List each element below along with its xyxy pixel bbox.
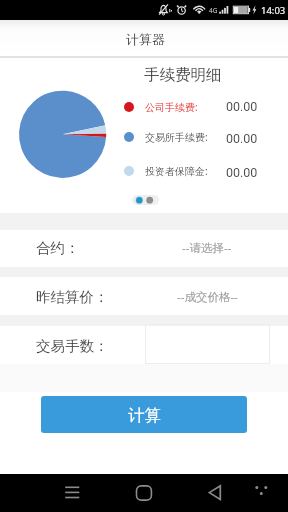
staticText: 交易所手续费: — [145, 130, 208, 144]
button[interactable]: Recent apps — [58, 474, 88, 512]
button[interactable]: Lots input — [145, 324, 270, 364]
staticText: 00.00 — [226, 165, 258, 180]
staticText: 计算 — [128, 405, 161, 426]
staticText: 合约： — [36, 239, 80, 257]
staticText: 4G — [209, 6, 218, 15]
staticText: 投资者保障金: — [145, 164, 208, 178]
button[interactable]: 合约： — [0, 229, 288, 267]
button[interactable]: Page indicator — [132, 195, 159, 205]
staticText: --成交价格-- — [177, 289, 238, 305]
button[interactable]: Back — [200, 474, 230, 512]
staticText: --请选择-- — [182, 240, 232, 256]
staticText: 昨结算价： — [36, 288, 109, 306]
staticText: 00.00 — [226, 131, 258, 146]
staticText: 手续费明细 — [144, 65, 222, 85]
staticText: 交易手数： — [36, 337, 109, 355]
staticText: 公司手续费: — [145, 100, 198, 114]
button[interactable]: 计算 — [41, 396, 247, 433]
staticText: 14:03 — [261, 4, 286, 17]
staticText: 计算器 — [126, 31, 165, 47]
button[interactable]: 昨结算价： — [0, 277, 288, 316]
staticText: 00.00 — [226, 99, 258, 114]
button[interactable]: Home — [129, 474, 159, 512]
